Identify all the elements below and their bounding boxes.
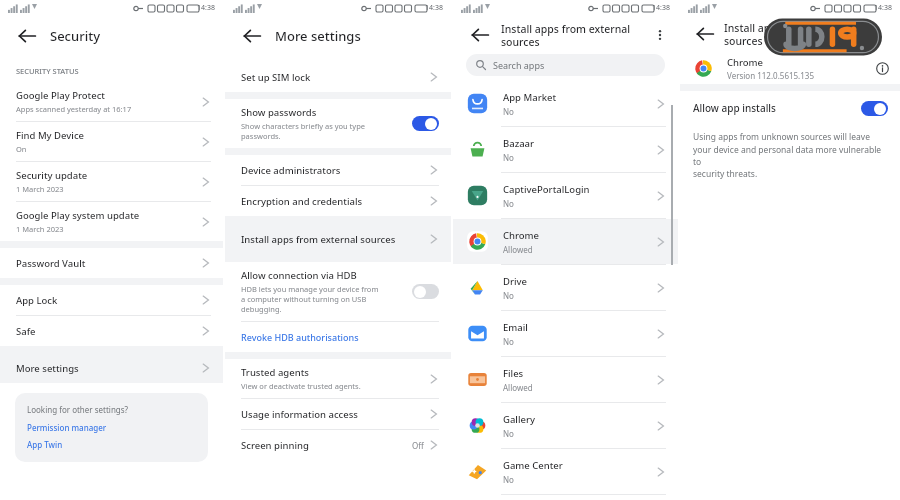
button[interactable]: Device administrators [225,155,451,185]
button[interactable]: Google Play system update [0,202,223,241]
staticText: 14:38 [652,3,670,13]
button[interactable]: Trusted agents [225,359,451,398]
button[interactable]: On [861,101,888,116]
button[interactable]: More settings [0,353,223,383]
button[interactable]: Search apps [466,54,665,76]
staticText: App Twin [27,439,63,450]
button[interactable]: App Twin [27,439,63,450]
button[interactable]: Chrome [453,219,678,264]
staticText: Show passwords [241,106,317,119]
button[interactable]: Google Play Protect [0,82,223,121]
staticText: Device administrators [241,164,341,177]
button[interactable]: Back [239,23,265,49]
staticText: Gallery [503,413,535,426]
button[interactable]: Allow connection via HDB [225,262,451,321]
button[interactable]: Allow app installs [680,91,900,125]
staticText: 14:38 [197,3,215,13]
button[interactable]: Drive [453,265,678,310]
staticText: Bazaar [503,137,535,150]
button[interactable]: Files [453,357,678,402]
button[interactable]: Usage information access [225,399,451,429]
button[interactable]: Screen pinning [225,430,451,460]
staticText: Version 112.0.5615.135 [727,70,814,81]
button[interactable]: Set up SIM lock [225,62,451,92]
staticText: Chrome [503,229,540,242]
button[interactable]: Bazaar [453,127,678,172]
staticText: On [16,144,27,154]
staticText: 1 March 2023 [16,224,64,234]
button[interactable]: CaptivePortalLogin [453,173,678,218]
staticText: Allow connection via HDB [241,269,357,282]
button[interactable]: Show passwords [225,99,451,148]
staticText: Set up SIM lock [241,71,311,84]
button[interactable]: Game Center [453,449,678,494]
staticText: Show characters briefly as you type pass… [241,121,365,141]
staticText: Trusted agents [241,366,309,379]
staticText: No [503,474,514,485]
button[interactable]: Back [14,23,40,49]
staticText: No [503,198,514,209]
staticText: Game Center [503,459,563,472]
button[interactable]: On [412,116,439,131]
staticText: Files [503,367,524,380]
staticText: CaptivePortalLogin [503,183,590,196]
button[interactable]: Back [692,21,718,47]
button[interactable]: Password Vault [0,248,223,278]
button[interactable]: Permission manager [27,422,107,433]
staticText: No [503,290,514,301]
staticText: Drive [503,275,527,288]
button[interactable]: Revoke HDB authorisations [225,322,451,352]
button[interactable]: App Market [453,81,678,126]
staticText: Search apps [493,59,545,71]
staticText: Install apps from external sources [241,233,396,246]
button[interactable]: Security update [0,162,223,201]
staticText: HDB lets you manage your device from a c… [241,284,379,314]
staticText: Google Play system update [16,209,140,222]
staticText: Looking for other settings? [27,404,129,415]
staticText: No [503,428,514,439]
button[interactable]: App info [874,60,890,76]
staticText: Install apps from external sources [501,22,650,49]
staticText: Password Vault [16,257,86,270]
staticText: Security [50,27,100,45]
staticText: 14:38 [874,3,892,13]
button[interactable]: Safe [0,316,223,346]
staticText: More settings [275,27,361,45]
button[interactable]: Back [467,22,493,48]
staticText: 1 March 2023 [16,184,64,194]
button[interactable]: Encryption and credentials [225,186,451,216]
staticText: Find My Device [16,129,85,142]
staticText: Encryption and credentials [241,195,363,208]
staticText: Screen pinning [241,439,309,452]
staticText: Revoke HDB authorisations [241,331,359,343]
staticText: Chrome [727,56,764,69]
staticText: App Market [503,91,557,104]
staticText: View or deactivate trusted agents. [241,381,361,391]
staticText: Using apps from unknown sources will lea… [693,131,887,179]
staticText: No [503,336,514,347]
button[interactable]: Install apps from external sources [225,223,451,255]
button[interactable]: Gallery [453,403,678,448]
staticText: Allowed [503,244,533,255]
staticText: Apps scanned yesterday at 16:17 [16,104,132,114]
button[interactable]: Off [412,284,439,299]
button[interactable]: Email [453,311,678,356]
staticText: Email [503,321,528,334]
staticText: More settings [16,362,79,375]
staticText: No [503,152,514,163]
staticText: Security update [16,169,88,182]
staticText: SECURITY STATUS [16,66,79,76]
button[interactable]: Find My Device [0,122,223,161]
staticText: No [503,106,514,117]
staticText: Safe [16,325,36,338]
staticText: App Lock [16,294,58,307]
staticText: Off [412,440,424,451]
staticText: Allowed [503,382,533,393]
staticText: Install apps from external sources [724,21,892,48]
staticText: Google Play Protect [16,89,105,102]
staticText: Permission manager [27,422,107,433]
button[interactable]: More options [650,25,670,45]
staticText: 14:38 [425,3,443,13]
staticText: Usage information access [241,408,358,421]
button[interactable]: App Lock [0,285,223,315]
